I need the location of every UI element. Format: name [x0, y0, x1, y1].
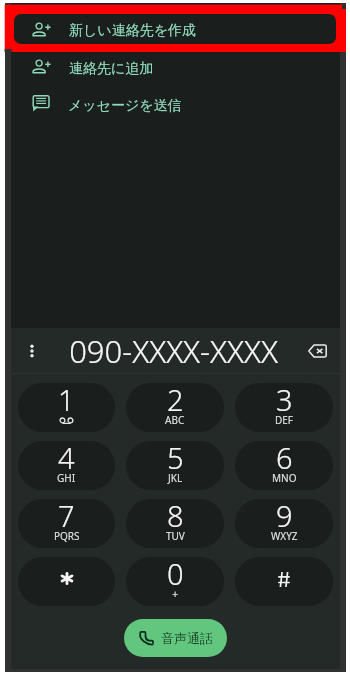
staticText: PQRS	[54, 529, 80, 543]
button[interactable]: 新しい連絡先を作成	[14, 14, 336, 44]
button[interactable]: 9	[235, 499, 333, 548]
button[interactable]: 音声通話	[124, 619, 227, 657]
staticText: 6	[276, 441, 293, 477]
button[interactable]: 8	[126, 499, 224, 548]
button[interactable]: 連絡先に追加	[11, 48, 340, 85]
staticText: 新しい連絡先を作成	[69, 25, 196, 43]
staticText: 5	[167, 441, 184, 477]
staticText: TUV	[166, 529, 185, 543]
button[interactable]: 6	[235, 441, 333, 490]
button[interactable]: Backspace	[294, 328, 340, 374]
button[interactable]: メッセージを送信	[11, 85, 340, 122]
staticText: 2	[167, 383, 184, 419]
staticText: 1	[58, 383, 75, 419]
staticText: 9	[276, 499, 293, 535]
staticText: 090-XXXX-XXXX	[69, 330, 278, 372]
staticText: 8	[167, 499, 184, 535]
staticText: DEF	[275, 413, 294, 427]
staticText: +	[172, 586, 179, 601]
staticText: 3	[276, 383, 293, 419]
staticText: 7	[58, 499, 75, 535]
button[interactable]: 4	[18, 441, 115, 490]
button[interactable]: 新しい連絡先を作成	[11, 13, 340, 50]
button[interactable]: 5	[126, 441, 224, 490]
staticText: 音声通話	[161, 630, 213, 646]
staticText: メッセージを送信	[68, 97, 182, 115]
staticText: WXYZ	[271, 529, 298, 543]
staticText: ABC	[165, 413, 185, 427]
staticText: 0	[167, 557, 184, 593]
button[interactable]: More options	[11, 328, 53, 374]
staticText: 新しい連絡先を作成	[69, 22, 196, 40]
staticText: MNO	[272, 471, 297, 485]
staticText: 4	[58, 441, 75, 477]
staticText: 連絡先に追加	[69, 60, 154, 78]
button[interactable]	[235, 557, 333, 606]
button[interactable]: 3	[235, 383, 333, 432]
button[interactable]: 2	[126, 383, 224, 432]
button[interactable]	[18, 557, 115, 606]
button[interactable]: 1	[18, 383, 115, 432]
staticText: GHI	[57, 471, 76, 485]
button[interactable]: 0	[126, 557, 224, 606]
staticText: JKL	[168, 471, 183, 485]
button[interactable]: 7	[18, 499, 115, 548]
